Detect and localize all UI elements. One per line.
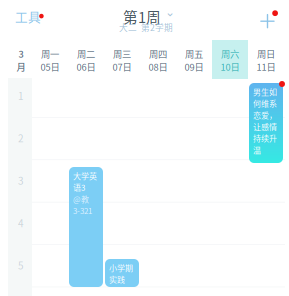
staticText: 小学期实践	[109, 262, 133, 285]
staticText: 大学英语3	[73, 170, 97, 193]
button[interactable]: 大学英语3	[69, 167, 103, 287]
staticText: 工具	[15, 7, 41, 25]
staticText: 第1周	[123, 6, 161, 27]
staticText: 09日	[184, 60, 203, 73]
staticText: 3	[18, 47, 23, 60]
staticText: 周六	[221, 47, 239, 60]
button[interactable]: 周五	[176, 40, 212, 79]
button[interactable]: 工具	[13, 5, 53, 33]
staticText: 周三	[113, 47, 131, 60]
staticText: 10日	[220, 60, 239, 73]
staticText: ⌄	[165, 5, 175, 19]
staticText: 周二	[77, 47, 95, 60]
button[interactable]: 周三	[104, 40, 140, 79]
button[interactable]: 周日	[248, 40, 284, 79]
staticText: 1	[18, 88, 24, 103]
staticText: 06日	[76, 60, 95, 73]
staticText: 月	[16, 60, 25, 73]
staticText: 男生如何维系恋爱，让感情持续升温	[253, 86, 277, 155]
button[interactable]: 周四	[140, 40, 176, 79]
staticText: @教3-321	[73, 193, 92, 216]
staticText: 3	[18, 173, 24, 188]
staticText: 大二 第2学期	[119, 21, 173, 33]
staticText: 5	[18, 258, 24, 272]
staticText: 周日	[257, 47, 275, 60]
staticText: 4	[18, 216, 24, 230]
staticText: 05日	[40, 60, 59, 73]
button[interactable]: 男生如何维系恋爱，让感情持续升温	[249, 83, 283, 163]
button[interactable]: 添加课程	[257, 6, 289, 36]
staticText: 2	[18, 131, 24, 145]
staticText: 08日	[148, 60, 167, 73]
staticText: 周一	[41, 47, 59, 60]
button[interactable]: 周六	[212, 40, 248, 79]
button[interactable]: 小学期实践	[105, 259, 139, 287]
staticText: 周五	[185, 47, 203, 60]
staticText: 11日	[256, 60, 275, 73]
staticText: 周四	[149, 47, 167, 60]
button[interactable]: 周二	[68, 40, 104, 79]
staticText: 07日	[112, 60, 131, 73]
button[interactable]: 第1周	[108, 6, 184, 34]
button[interactable]: 周一	[32, 40, 68, 79]
